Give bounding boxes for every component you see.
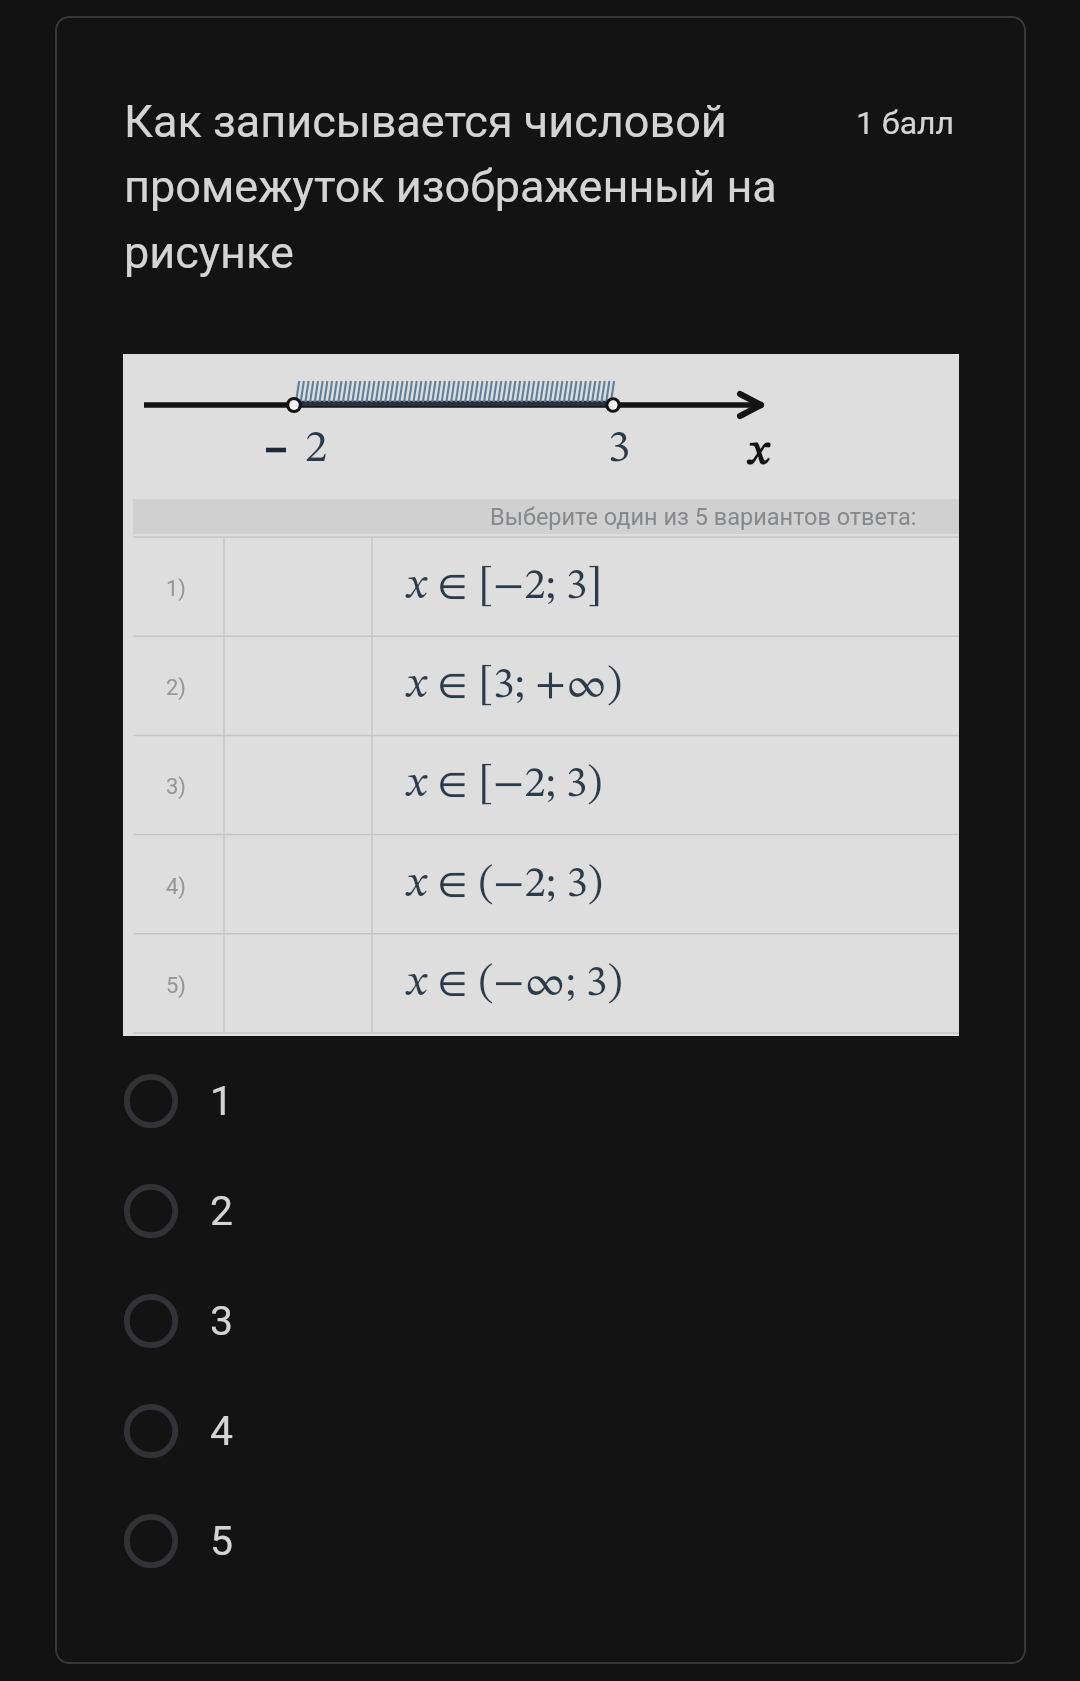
staticText: x [407,763,427,806]
staticText: 5 [210,1517,234,1565]
staticText: 4) [166,874,187,900]
staticText: 4 [210,1407,234,1455]
staticText: Выберите один из 5 вариантов ответа: [490,503,917,531]
staticText: 5) [166,973,187,999]
staticText: 3 [608,427,631,472]
staticText: ∈ (−2; 3) [427,863,604,906]
staticText: 1 балл [856,104,955,142]
staticText: 3) [166,774,187,800]
staticText: x [407,863,427,906]
staticText: 2 [305,427,328,472]
staticText: x [407,962,427,1005]
staticText: Как записывается числовой промежуток изо… [124,95,784,279]
staticText: x [407,565,427,608]
button[interactable]: 4 [123,1376,823,1486]
staticText: ∈ (−∞; 3) [427,962,623,1005]
staticText: x [749,430,769,474]
staticText: 2) [166,675,187,701]
staticText: 1 [210,1077,234,1125]
staticText: ∈ [3; +∞) [427,664,623,707]
staticText: 3 [210,1297,234,1345]
button[interactable]: 5 [123,1486,823,1596]
staticText: ∈ [−2; 3] [427,565,603,608]
button[interactable]: 2 [123,1156,823,1266]
button[interactable]: 3 [123,1266,823,1376]
button[interactable]: 1 [123,1046,823,1156]
staticText: 1) [166,576,187,602]
staticText: 2 [210,1187,234,1235]
staticText: x [407,664,427,707]
button[interactable]: Number line from minus 2 to 3 with five … [123,354,959,1036]
staticText: ∈ [−2; 3) [427,763,603,806]
